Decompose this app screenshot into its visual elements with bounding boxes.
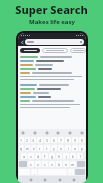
button[interactable]: i — [65, 145, 71, 151]
button[interactable]: r — [37, 145, 43, 151]
staticText: m — [71, 162, 75, 167]
staticText: d — [37, 154, 40, 159]
button[interactable]: Clipboard — [32, 130, 37, 135]
button[interactable]: Voice — [55, 130, 60, 135]
button[interactable]: s — [28, 153, 34, 159]
staticText: r — [39, 146, 41, 151]
button[interactable]: 0 — [79, 137, 85, 143]
staticText: l — [80, 154, 81, 159]
staticText: y — [53, 146, 55, 151]
staticText: c — [44, 162, 46, 167]
staticText: s — [30, 154, 32, 159]
button[interactable]: 3 — [31, 137, 36, 143]
staticText: u — [60, 146, 63, 151]
button[interactable]: Key — [19, 161, 27, 167]
button[interactable]: 1 — [19, 137, 24, 143]
button[interactable]: b — [56, 161, 62, 167]
button[interactable]: Key — [77, 161, 85, 167]
staticText: 3 — [32, 138, 35, 143]
button[interactable]: y — [51, 145, 57, 151]
staticText: 7 — [60, 138, 63, 143]
button[interactable]: Settings — [57, 177, 62, 182]
staticText: b — [58, 162, 61, 167]
button[interactable]: w — [25, 145, 30, 151]
staticText: q — [20, 146, 23, 151]
staticText: x — [37, 162, 39, 167]
button[interactable]: c — [42, 161, 48, 167]
button[interactable]: 9 — [72, 137, 78, 143]
staticText: 1 — [20, 138, 23, 143]
button[interactable]: . — [68, 169, 74, 175]
button[interactable]: 6 — [51, 137, 57, 143]
staticText: g — [51, 154, 54, 159]
button[interactable]: m — [70, 161, 76, 167]
staticText: o — [74, 146, 77, 151]
staticText: h — [58, 154, 61, 159]
staticText: z — [30, 162, 32, 167]
staticText: . — [71, 170, 72, 175]
button[interactable]: 4 — [37, 137, 43, 143]
staticText: v — [51, 162, 53, 167]
staticText: 6 — [53, 138, 56, 143]
staticText: Makes life easy — [29, 18, 75, 26]
button[interactable] — [20, 48, 40, 53]
button[interactable]: d — [35, 153, 41, 159]
button[interactable]: z — [28, 161, 34, 167]
button[interactable]: k — [70, 153, 76, 159]
staticText: 4 — [39, 138, 42, 143]
staticText: i — [68, 146, 69, 151]
button[interactable]: h — [56, 153, 62, 159]
button[interactable]: v — [49, 161, 55, 167]
button[interactable]: 8 — [65, 137, 71, 143]
button[interactable]: Key — [75, 169, 85, 175]
button[interactable]: f — [42, 153, 48, 159]
button[interactable]: Share — [71, 177, 76, 182]
staticText: p — [81, 146, 84, 151]
button[interactable]: u — [58, 145, 64, 151]
button[interactable]: o — [72, 145, 78, 151]
button[interactable] — [42, 48, 68, 53]
button[interactable]: x — [35, 161, 41, 167]
staticText: t — [46, 146, 48, 151]
button[interactable]: j — [63, 153, 69, 159]
button[interactable] — [25, 39, 84, 45]
staticText: e — [33, 146, 35, 151]
button[interactable]: 7 — [58, 137, 64, 143]
staticText: j — [66, 154, 67, 159]
staticText: 8 — [67, 138, 70, 143]
staticText: n — [65, 162, 68, 167]
button[interactable]: q — [19, 145, 24, 151]
staticText: 9 — [74, 138, 77, 143]
staticText: k — [72, 154, 74, 159]
staticText: 0 — [81, 138, 84, 143]
button[interactable]: a — [21, 153, 27, 159]
staticText: w — [26, 146, 29, 151]
button[interactable]: Sticker — [67, 130, 72, 135]
staticText: 2 — [26, 138, 29, 143]
button[interactable]: t — [44, 145, 50, 151]
staticText: a — [23, 154, 25, 159]
button[interactable]: p — [79, 145, 85, 151]
staticText: 5 — [46, 138, 49, 143]
button[interactable]: e — [31, 145, 36, 151]
button[interactable]: n — [63, 161, 69, 167]
button[interactable]: More — [79, 130, 84, 135]
button[interactable]: Emoji — [20, 130, 25, 135]
button[interactable]: Settings — [44, 130, 49, 135]
button[interactable]: 2 — [25, 137, 30, 143]
button[interactable]: Back — [20, 40, 25, 45]
button[interactable]: 5 — [44, 137, 50, 143]
button[interactable]: Keyboard — [28, 177, 33, 182]
button[interactable]: g — [49, 153, 55, 159]
button[interactable]: Translate — [42, 177, 47, 182]
button[interactable]: l — [77, 153, 83, 159]
staticText: f — [44, 154, 46, 159]
staticText: Super Search — [15, 2, 88, 17]
staticText: , — [34, 170, 35, 175]
button[interactable]: , — [31, 169, 37, 175]
button[interactable] — [70, 48, 86, 53]
